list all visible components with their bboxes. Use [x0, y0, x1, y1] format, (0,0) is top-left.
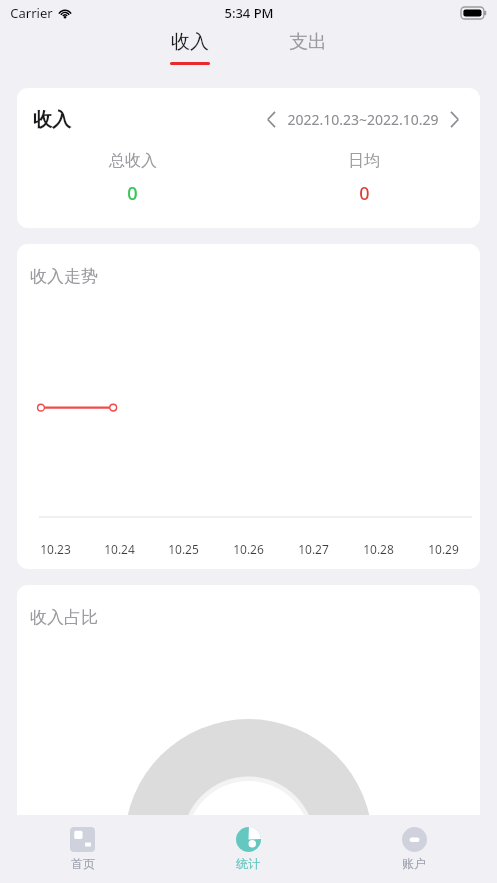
- staticText: 日均: [348, 151, 380, 171]
- staticText: 收入: [171, 30, 209, 54]
- button[interactable]: 支出: [278, 26, 338, 69]
- staticText: 总收入: [109, 151, 157, 171]
- staticText: 10.25: [168, 541, 199, 557]
- button[interactable]: 日均: [248, 151, 480, 206]
- staticText: 2022.10.23~2022.10.29: [287, 110, 439, 129]
- staticText: 10.28: [363, 541, 394, 557]
- button[interactable]: 统计: [165, 821, 331, 877]
- staticText: 首页: [71, 856, 95, 871]
- staticText: 0: [359, 181, 370, 206]
- staticText: 收入: [33, 108, 71, 132]
- staticText: 收入走势: [30, 266, 98, 287]
- staticText: 统计: [236, 856, 260, 871]
- staticText: Carrier: [10, 4, 53, 22]
- staticText: 10.29: [428, 541, 459, 557]
- staticText: 10.27: [298, 541, 329, 557]
- staticText: 账户: [402, 856, 426, 871]
- button[interactable]: 总收入: [17, 151, 248, 206]
- staticText: 10.23: [40, 541, 71, 557]
- button[interactable]: Next period: [445, 106, 464, 133]
- button[interactable]: 收入: [160, 26, 220, 69]
- button[interactable]: 账户: [331, 821, 497, 877]
- staticText: 支出: [289, 30, 327, 54]
- staticText: 10.26: [233, 541, 264, 557]
- button[interactable]: 首页: [0, 821, 165, 877]
- staticText: 5:34 PM: [224, 4, 274, 22]
- staticText: 10.24: [104, 541, 135, 557]
- staticText: 收入占比: [30, 607, 98, 628]
- button[interactable]: Previous period: [262, 106, 281, 133]
- staticText: 0: [127, 181, 138, 206]
